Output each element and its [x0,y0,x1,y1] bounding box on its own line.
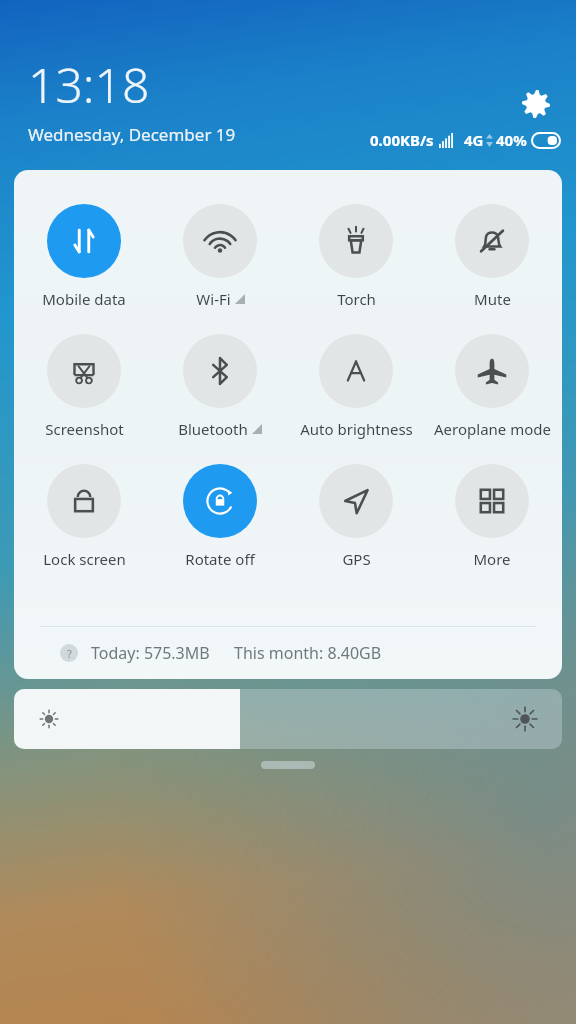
button[interactable]: Aeroplane mode [426,334,558,439]
staticText: Rotate off [185,549,255,569]
button[interactable]: Mute [426,204,558,309]
button[interactable]: Auto brightness [290,334,422,439]
staticText: 0.00KB/s [370,130,434,150]
staticText: GPS [342,549,371,569]
button[interactable]: Expand [261,761,315,769]
button[interactable]: Brightness [14,689,562,749]
staticText: 13:18 [28,52,150,117]
button[interactable]: Screenshot [18,334,150,439]
staticText: Mute [474,289,511,309]
button[interactable]: More [426,464,558,569]
staticText: Auto brightness [300,419,413,439]
button[interactable]: GPS [290,464,422,569]
button[interactable]: Lock screen [18,464,150,569]
button[interactable]: ? [60,627,562,679]
staticText: More [473,549,511,569]
staticText: ? [67,646,72,661]
staticText: Torch [337,289,376,309]
staticText: Wednesday, December 19 [28,123,236,146]
staticText: 40% [496,130,527,150]
button[interactable]: Settings [514,82,558,126]
staticText: Bluetooth [178,419,248,439]
staticText: Lock screen [43,549,126,569]
button[interactable]: Torch [290,204,422,309]
staticText: Today: 575.3MB [91,642,210,664]
button[interactable]: Wi-Fi [154,204,286,309]
button[interactable]: Mobile data [18,204,150,309]
staticText: 4G [464,130,484,150]
staticText: Mobile data [42,289,126,309]
staticText: Screenshot [45,419,124,439]
button[interactable]: Rotate off [154,464,286,569]
staticText: Wi-Fi [196,289,231,309]
button[interactable]: Bluetooth [154,334,286,439]
staticText: This month: 8.40GB [234,642,382,664]
staticText: Aeroplane mode [434,419,551,439]
